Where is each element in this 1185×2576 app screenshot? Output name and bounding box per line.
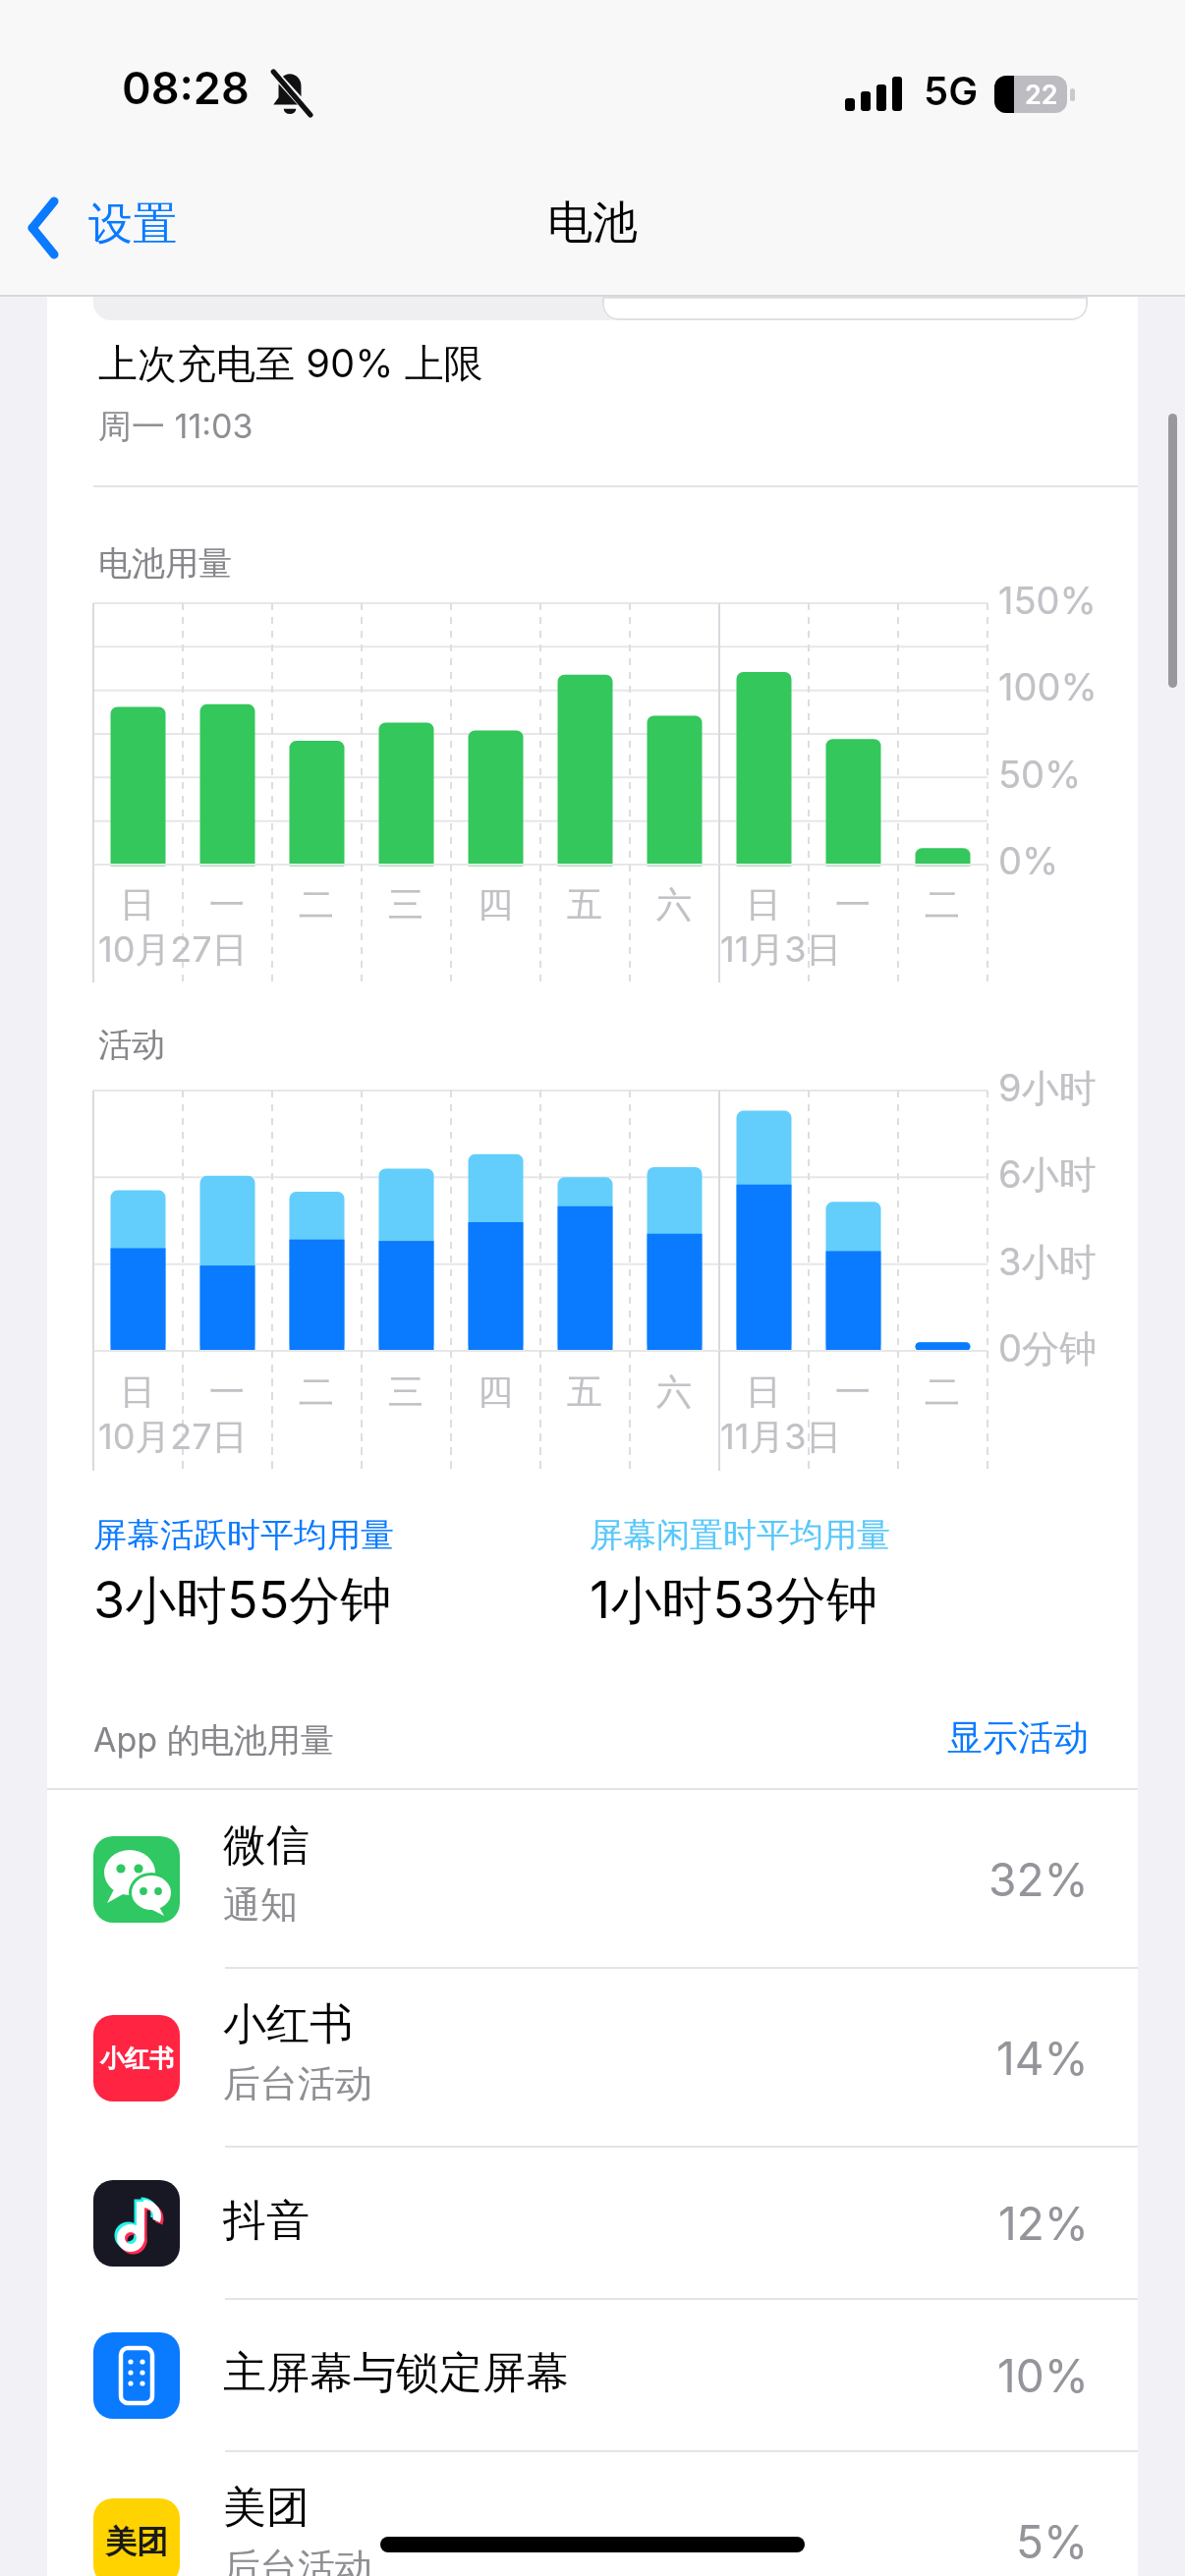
staticText: 小红书 — [100, 2044, 174, 2074]
staticText: 5G — [924, 67, 979, 114]
staticText: 10月27日 — [98, 927, 248, 973]
staticText: 上次充电至 90% 上限 — [98, 339, 483, 389]
staticText: 14% — [996, 2031, 1089, 2086]
staticText: 3小时 — [998, 1239, 1097, 1286]
button[interactable] — [47, 2300, 1138, 2452]
staticText: 1小时53分钟 — [590, 1569, 877, 1634]
staticText: 150% — [998, 578, 1097, 623]
button[interactable]: 显示活动 — [786, 1708, 1089, 1766]
staticText: 五 — [567, 1370, 602, 1414]
staticText: 后台活动 — [223, 2544, 372, 2576]
button[interactable]: 设置 — [24, 193, 250, 271]
staticText: 二 — [299, 1370, 334, 1414]
staticText: 一 — [835, 882, 871, 926]
staticText: 0分钟 — [998, 1325, 1097, 1372]
staticText: 日 — [746, 1370, 781, 1414]
button[interactable] — [47, 1790, 1138, 1969]
staticText: 一 — [835, 1370, 871, 1414]
staticText: 日 — [120, 1370, 155, 1414]
staticText: 四 — [478, 1370, 513, 1414]
staticText: 屏幕活跃时平均用量 — [93, 1514, 394, 1556]
staticText: 通知 — [223, 1881, 298, 1929]
staticText: 三 — [388, 882, 423, 926]
staticText: 50% — [998, 752, 1082, 797]
staticText: 显示活动 — [947, 1715, 1089, 1760]
staticText: 二 — [299, 882, 334, 926]
staticText: 美团 — [223, 2481, 310, 2535]
staticText: 22 — [1025, 79, 1058, 111]
staticText: 二 — [925, 1370, 960, 1414]
staticText: 一 — [209, 882, 245, 926]
staticText: 活动 — [98, 1024, 165, 1066]
staticText: 9小时 — [998, 1065, 1097, 1112]
staticText: 电池 — [547, 195, 638, 252]
staticText: 100% — [998, 664, 1098, 709]
staticText: 11月3日 — [720, 1415, 842, 1460]
staticText: 08:28 — [122, 61, 250, 114]
staticText: 设置 — [88, 196, 177, 252]
staticText: 电池用量 — [98, 542, 232, 585]
staticText: 6小时 — [998, 1151, 1097, 1199]
staticText: 0% — [998, 838, 1059, 883]
staticText: 5% — [1016, 2514, 1089, 2569]
staticText: 3小时55分钟 — [93, 1569, 392, 1634]
button[interactable] — [47, 2452, 1138, 2576]
staticText: 抖音 — [223, 2194, 310, 2248]
staticText: 11月3日 — [720, 927, 842, 973]
staticText: 六 — [656, 882, 692, 926]
staticText: 32% — [988, 1852, 1089, 1907]
staticText: 小红书 — [223, 1997, 353, 2051]
staticText: App 的电池用量 — [93, 1719, 334, 1762]
button[interactable] — [47, 1969, 1138, 2148]
staticText: 五 — [567, 882, 602, 926]
staticText: 二 — [925, 882, 960, 926]
staticText: 12% — [998, 2196, 1089, 2251]
staticText: 美团 — [105, 2522, 168, 2561]
staticText: 10月27日 — [98, 1415, 248, 1460]
staticText: 四 — [478, 882, 513, 926]
button[interactable] — [47, 2148, 1138, 2300]
staticText: 主屏幕与锁定屏幕 — [223, 2346, 569, 2400]
staticText: 屏幕闲置时平均用量 — [590, 1514, 890, 1556]
staticText: 日 — [120, 882, 155, 926]
staticText: 六 — [656, 1370, 692, 1414]
staticText: 后台活动 — [223, 2060, 372, 2107]
staticText: 一 — [209, 1370, 245, 1414]
button[interactable] — [602, 297, 1088, 320]
staticText: 三 — [388, 1370, 423, 1414]
staticText: 周一 11:03 — [98, 406, 254, 448]
staticText: 10% — [997, 2348, 1089, 2403]
staticText: 日 — [746, 882, 781, 926]
staticText: 微信 — [223, 1819, 310, 1873]
